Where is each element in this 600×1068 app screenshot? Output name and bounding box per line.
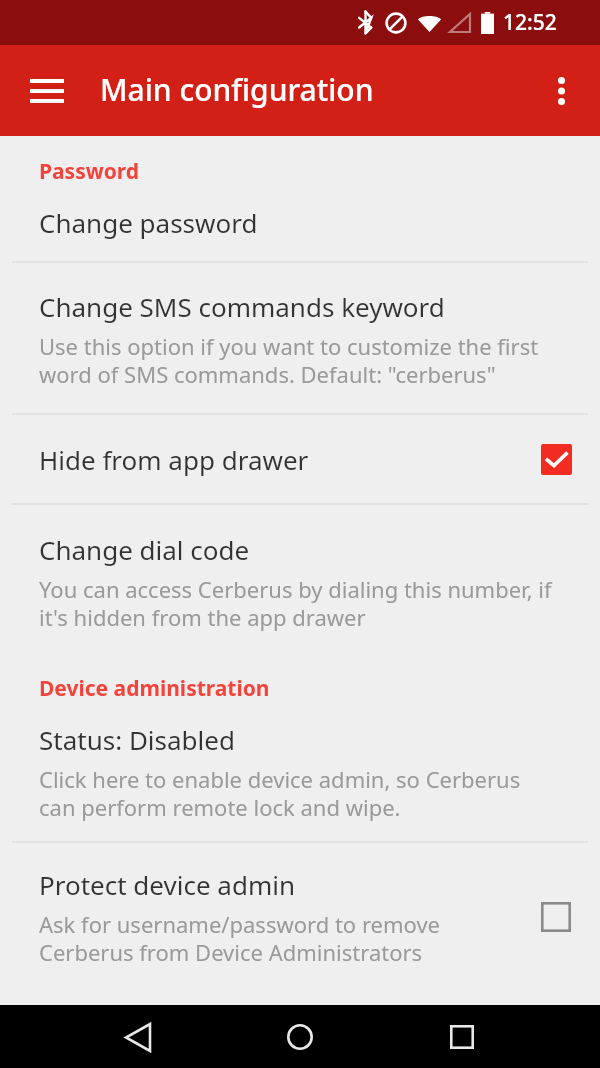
staticText: Password xyxy=(39,157,140,186)
button[interactable]: Home xyxy=(270,1007,330,1067)
staticText: Hide from app drawer xyxy=(39,442,309,477)
staticText: Click here to enable device admin, so Ce… xyxy=(39,764,521,822)
button[interactable]: Change dial code xyxy=(0,532,600,632)
button[interactable]: Protect device admin xyxy=(0,867,600,967)
button[interactable]: Status: Disabled xyxy=(0,722,600,822)
staticText: Main configuration xyxy=(100,69,374,110)
button[interactable]: Change SMS commands keyword xyxy=(0,289,600,389)
button[interactable]: Change password xyxy=(0,205,600,240)
button[interactable]: Open navigation drawer xyxy=(14,58,80,124)
button[interactable]: Hide from app drawer xyxy=(0,437,600,481)
staticText: 12:52 xyxy=(503,8,557,37)
staticText: Device administration xyxy=(39,674,270,703)
button[interactable]: Back xyxy=(108,1007,168,1067)
staticText: Protect device admin xyxy=(39,867,295,902)
staticText: Ask for username/password to remove Cerb… xyxy=(39,909,440,967)
button[interactable]: More options xyxy=(530,60,592,122)
staticText: Change password xyxy=(39,205,258,240)
staticText: Status: Disabled xyxy=(39,722,235,757)
staticText: Use this option if you want to customize… xyxy=(39,331,539,389)
staticText: You can access Cerberus by dialing this … xyxy=(39,574,552,632)
staticText: Change dial code xyxy=(39,532,250,567)
staticText: Change SMS commands keyword xyxy=(39,289,445,324)
button[interactable]: Recent apps xyxy=(432,1007,492,1067)
